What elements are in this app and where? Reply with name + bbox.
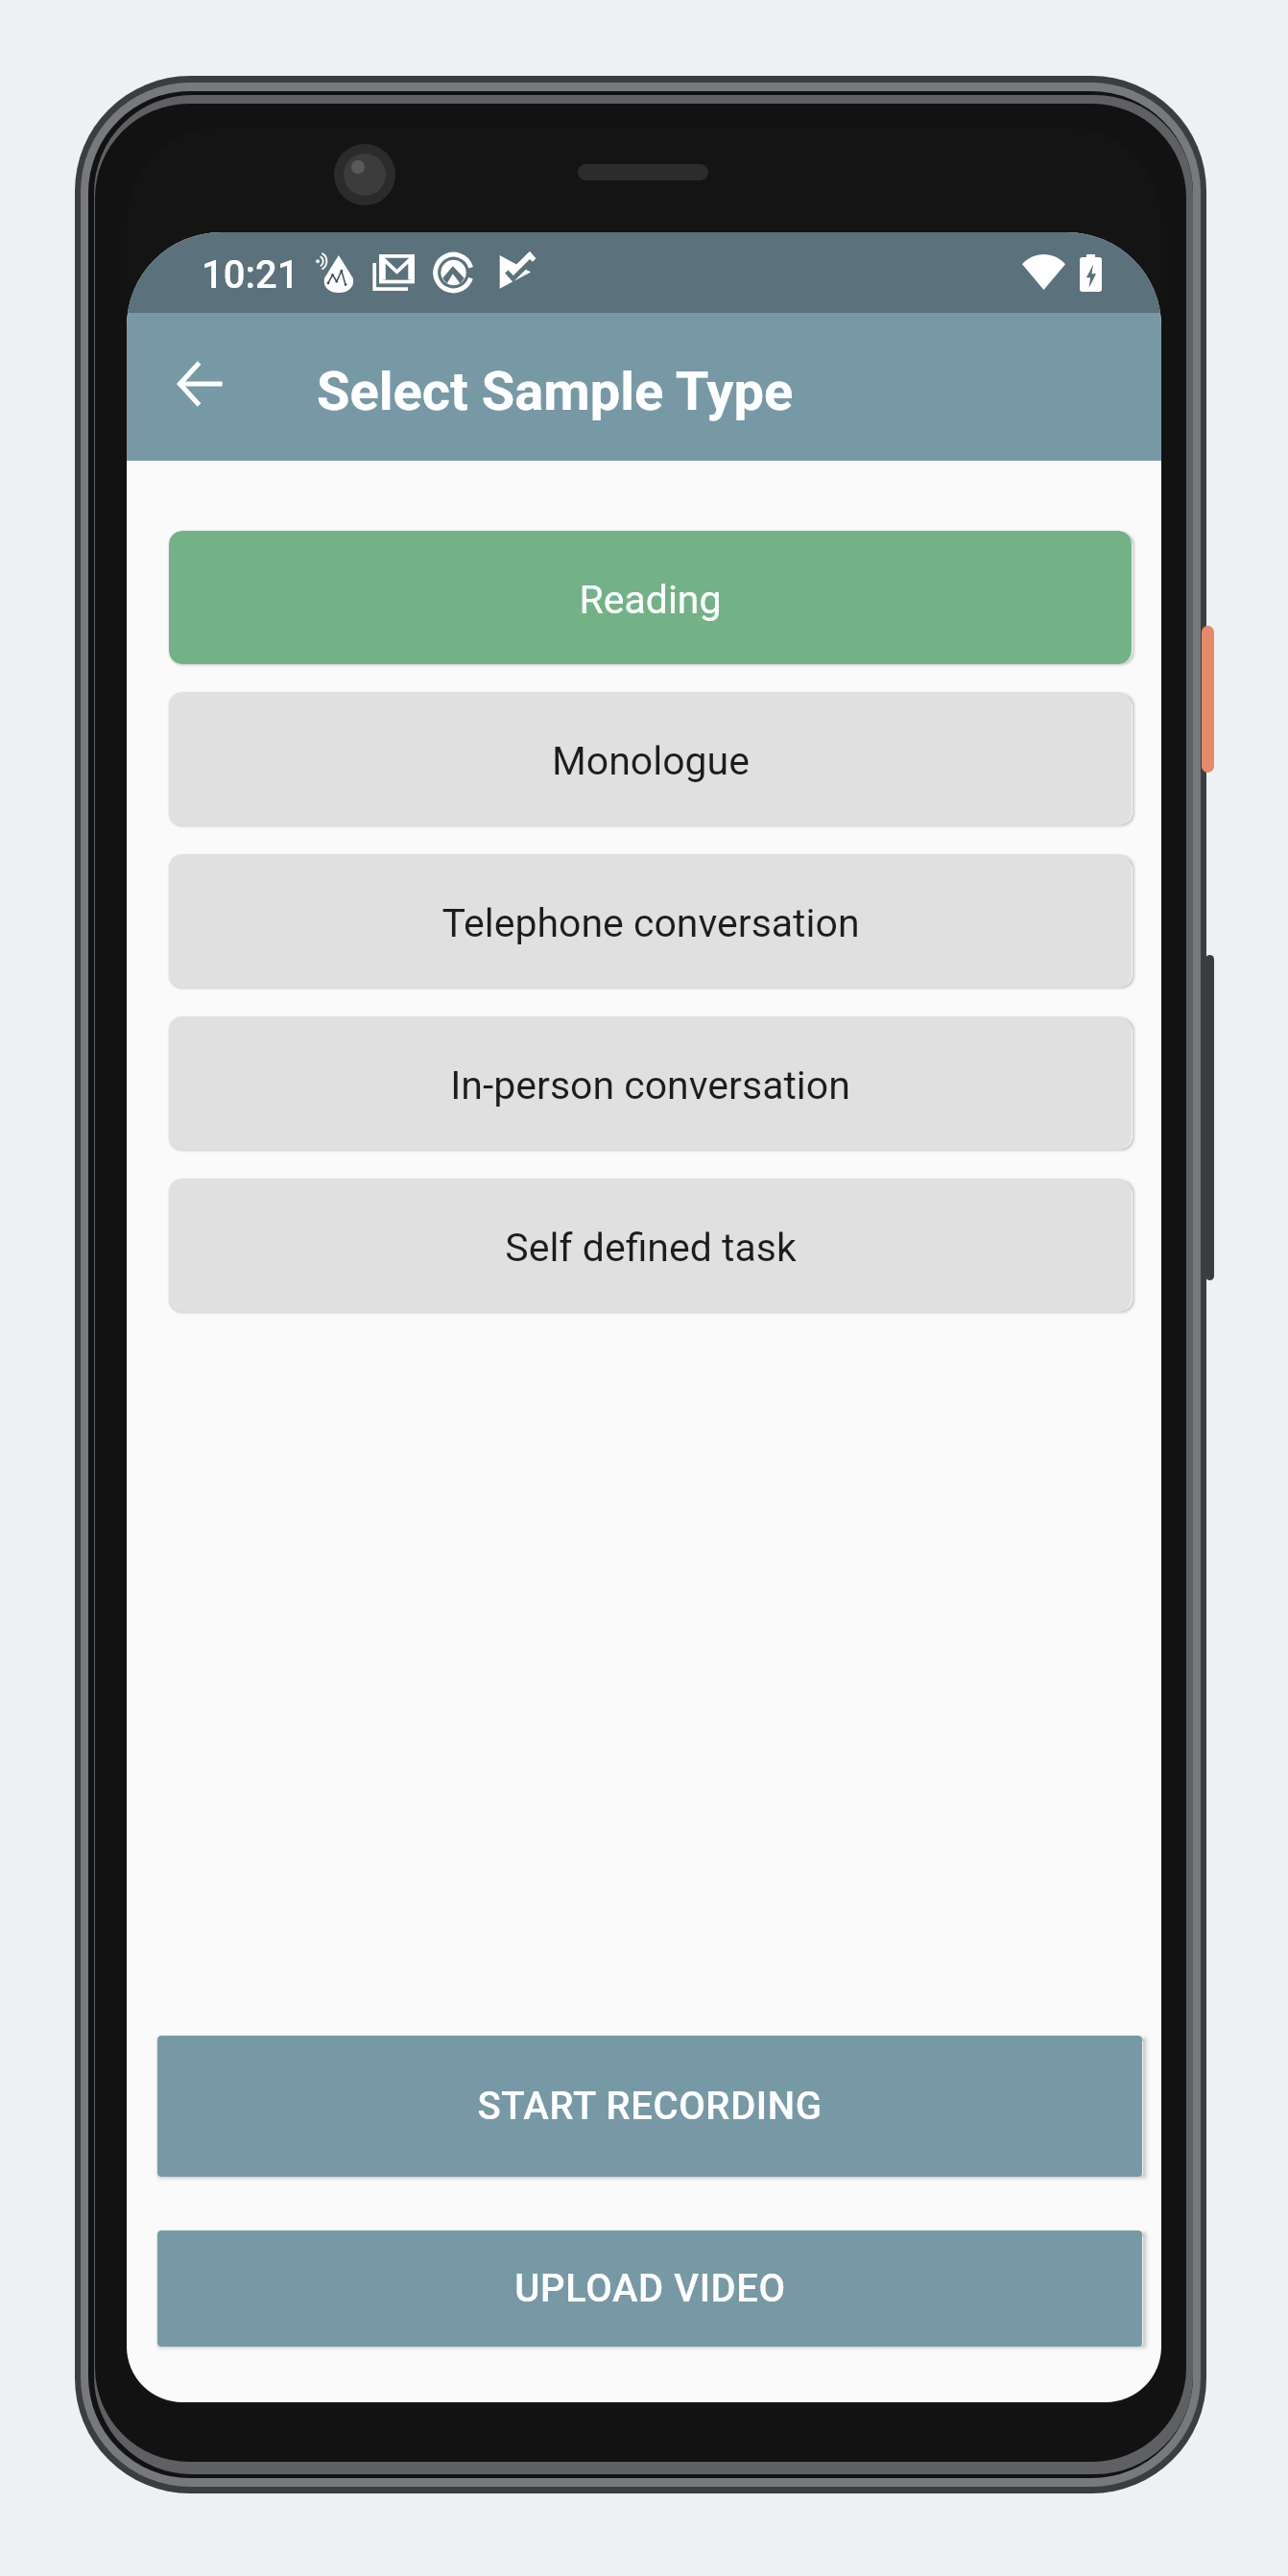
staticText: START RECORDING bbox=[477, 2084, 823, 2129]
button[interactable]: In-person conversation bbox=[169, 1016, 1132, 1150]
staticText: In-person conversation bbox=[450, 1062, 850, 1109]
button[interactable]: Reading bbox=[169, 531, 1132, 664]
button[interactable]: Monologue bbox=[169, 692, 1132, 825]
button[interactable]: Back bbox=[156, 340, 245, 428]
staticText: Reading bbox=[579, 577, 722, 623]
staticText: Select Sample Type bbox=[317, 360, 794, 423]
staticText: Monologue bbox=[552, 738, 750, 784]
staticText: Self defined task bbox=[505, 1225, 797, 1271]
button[interactable]: UPLOAD VIDEO bbox=[157, 2230, 1142, 2347]
button[interactable]: Telephone conversation bbox=[169, 854, 1132, 988]
staticText: UPLOAD VIDEO bbox=[514, 2266, 786, 2311]
button[interactable]: START RECORDING bbox=[157, 2036, 1142, 2177]
button[interactable]: Self defined task bbox=[169, 1179, 1132, 1312]
staticText: 10:21 bbox=[202, 252, 299, 298]
staticText: Telephone conversation bbox=[441, 900, 860, 946]
